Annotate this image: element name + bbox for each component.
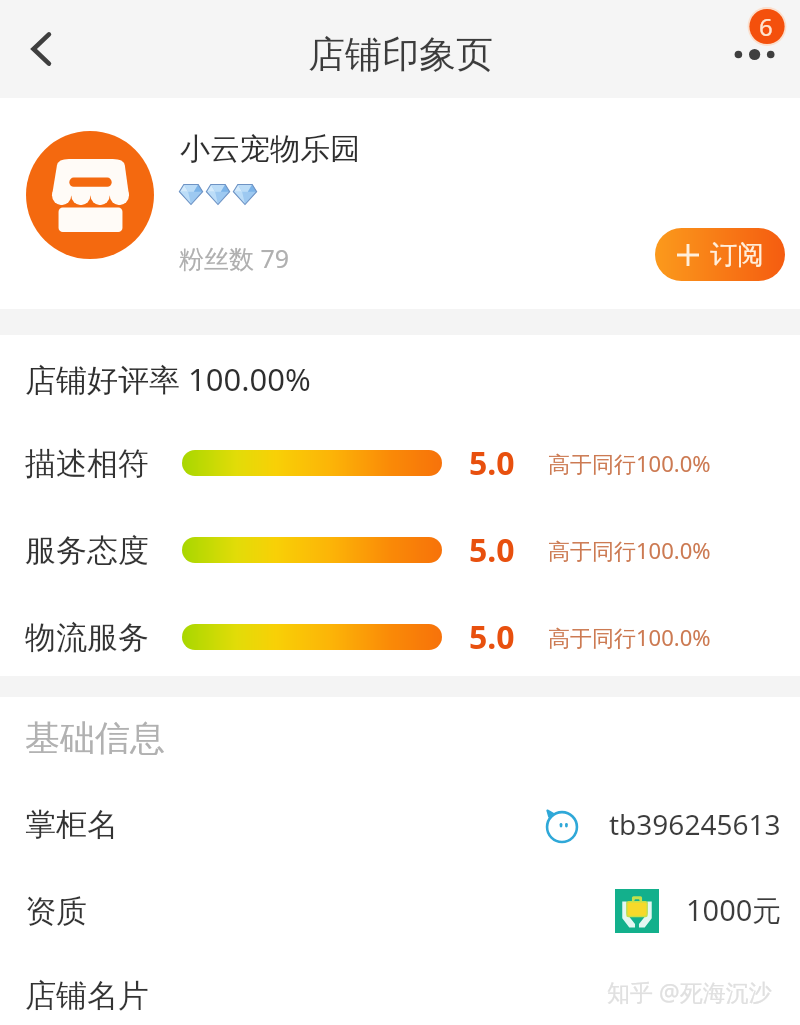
button[interactable]: 订阅 bbox=[655, 228, 785, 281]
button[interactable]: Back bbox=[0, 0, 82, 98]
staticText: 知乎 @死海沉沙 bbox=[607, 976, 772, 1007]
staticText: 高于同行100.0% bbox=[548, 535, 711, 565]
staticText: 店铺好评率 100.00% bbox=[25, 358, 311, 400]
button[interactable]: 掌柜名 bbox=[0, 788, 800, 860]
staticText: 物流服务 bbox=[25, 618, 149, 657]
button[interactable]: 店铺名片 bbox=[0, 959, 800, 1025]
staticText: 粉丝数 79 bbox=[179, 241, 290, 275]
staticText: 服务态度 bbox=[25, 531, 149, 570]
button[interactable]: 资质 bbox=[0, 875, 800, 947]
button[interactable] bbox=[20, 123, 440, 273]
staticText: 掌柜名 bbox=[25, 805, 118, 844]
staticText: 6 bbox=[759, 10, 773, 43]
button[interactable]: 物流服务 bbox=[0, 611, 800, 663]
staticText: 5.0 bbox=[469, 441, 515, 485]
staticText: 基础信息 bbox=[25, 716, 165, 760]
staticText: 1000元 bbox=[686, 890, 782, 930]
staticText: 小云宠物乐园 bbox=[180, 130, 360, 168]
staticText: 5.0 bbox=[469, 615, 515, 659]
staticText: 订阅 bbox=[710, 238, 764, 272]
staticText: 高于同行100.0% bbox=[548, 622, 711, 652]
button[interactable]: More options bbox=[710, 0, 800, 98]
staticText: tb396245613 bbox=[609, 805, 781, 843]
staticText: 店铺名片 bbox=[25, 976, 149, 1015]
staticText: 资质 bbox=[25, 892, 87, 931]
staticText: 5.0 bbox=[469, 528, 515, 572]
button[interactable]: 服务态度 bbox=[0, 524, 800, 576]
staticText: 高于同行100.0% bbox=[548, 448, 711, 478]
staticText: 描述相符 bbox=[25, 444, 149, 483]
staticText: 店铺印象页 bbox=[308, 31, 493, 78]
button[interactable]: 描述相符 bbox=[0, 437, 800, 489]
